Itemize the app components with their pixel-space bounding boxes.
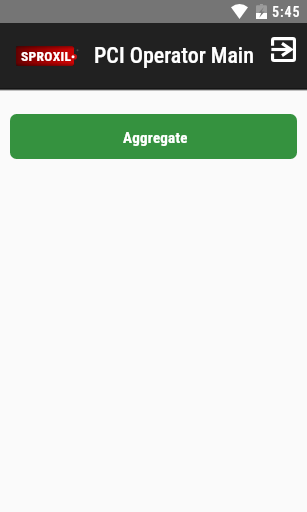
- button[interactable]: Aggregate: [10, 114, 297, 159]
- staticText: SPROXIL: [21, 48, 72, 64]
- staticText: 5:45: [272, 4, 301, 20]
- staticText: PCI Operator Main: [94, 43, 254, 69]
- staticText: Aggregate: [123, 129, 188, 147]
- button[interactable]: Log out: [271, 37, 296, 62]
